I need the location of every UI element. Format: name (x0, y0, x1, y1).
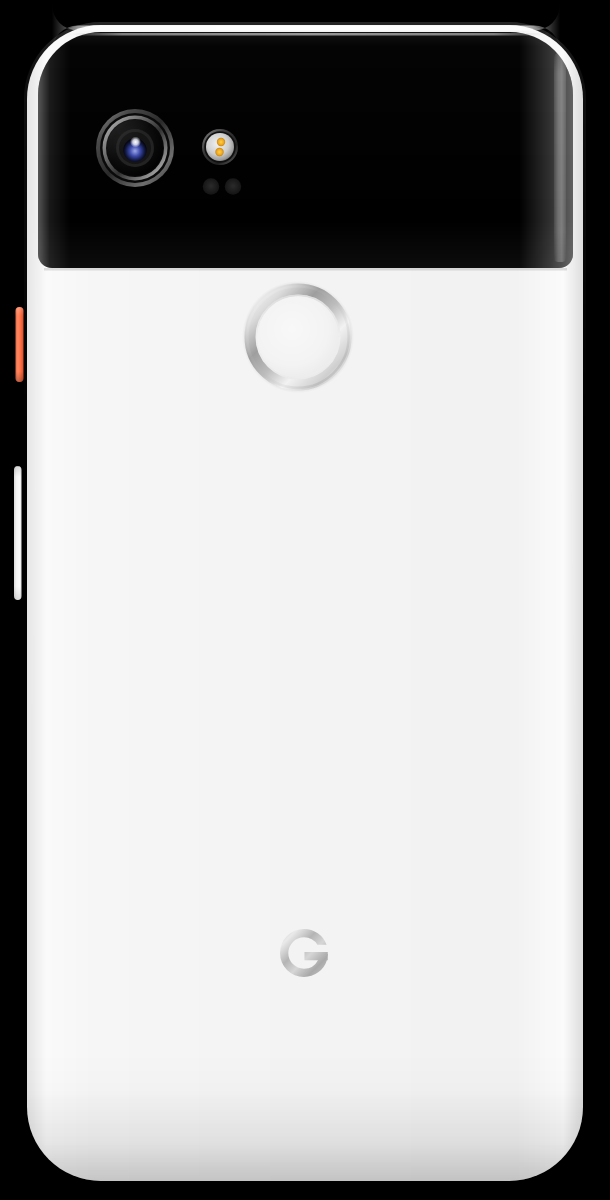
button[interactable]: Pixel 2 XL phone, rear view (0, 0, 610, 1200)
